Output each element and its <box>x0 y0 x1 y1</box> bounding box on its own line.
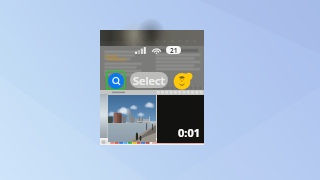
button[interactable]: Search <box>106 71 125 90</box>
staticText: 21 <box>170 46 178 54</box>
button[interactable]: 0:01 <box>157 95 204 143</box>
button[interactable]: Profile <box>170 69 192 91</box>
staticText: Select <box>133 73 166 88</box>
button[interactable]: Select <box>130 72 168 88</box>
staticText: 0:01 <box>178 125 200 140</box>
